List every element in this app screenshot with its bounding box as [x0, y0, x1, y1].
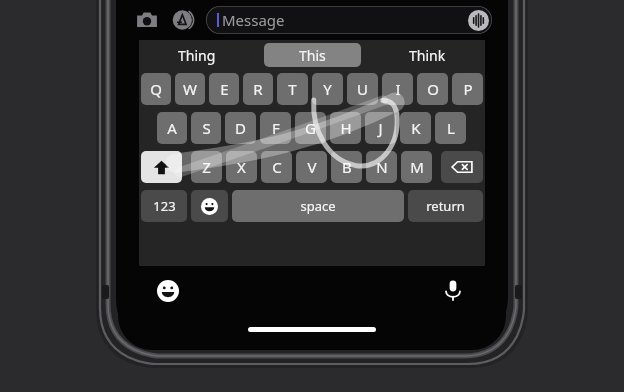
button[interactable]: O [417, 73, 448, 105]
staticText: F [272, 118, 280, 138]
staticText: 123 [153, 197, 176, 215]
staticText: N [376, 157, 388, 177]
button[interactable]: Z [191, 151, 222, 183]
staticText: G [305, 118, 316, 138]
staticText: This [299, 46, 326, 65]
button[interactable]: B [331, 151, 362, 183]
staticText: P [463, 79, 473, 99]
button[interactable]: Shift [141, 151, 182, 183]
button[interactable]: Dictation [439, 276, 467, 304]
staticText: Think [409, 46, 446, 65]
button[interactable]: Emoji [155, 278, 181, 304]
staticText: L [447, 118, 455, 138]
button[interactable]: M [401, 151, 432, 183]
staticText: Message [222, 10, 285, 30]
button[interactable]: D [225, 112, 256, 144]
button[interactable]: R [243, 73, 273, 105]
staticText: Thing [178, 46, 216, 65]
staticText: return [426, 197, 465, 215]
button[interactable]: I [382, 73, 413, 105]
staticText: T [288, 79, 297, 99]
button[interactable]: V [296, 151, 327, 183]
staticText: space [300, 197, 336, 215]
staticText: M [410, 157, 424, 177]
button[interactable]: Thing [178, 46, 216, 65]
staticText: Y [323, 79, 332, 99]
button[interactable]: 123 [141, 190, 187, 222]
button[interactable]: L [435, 112, 466, 144]
staticText: O [427, 79, 439, 99]
button[interactable]: Y [312, 73, 343, 105]
staticText: K [411, 118, 421, 138]
button[interactable]: F [260, 112, 291, 144]
button[interactable]: Backspace [441, 151, 483, 183]
staticText: B [342, 157, 352, 177]
button[interactable]: return [408, 190, 483, 222]
button[interactable]: Message [206, 6, 492, 34]
button[interactable]: K [400, 112, 431, 144]
staticText: D [235, 118, 246, 138]
button[interactable]: Q [141, 73, 171, 105]
staticText: E [220, 79, 229, 99]
staticText: V [307, 157, 317, 177]
staticText: Q [150, 79, 162, 99]
staticText: J [378, 118, 383, 138]
button[interactable]: Emoji keyboard [191, 190, 228, 222]
button[interactable]: T [277, 73, 308, 105]
button[interactable]: X [226, 151, 257, 183]
button[interactable]: Camera [132, 5, 162, 35]
staticText: C [272, 157, 282, 177]
button[interactable]: App Store [168, 5, 198, 35]
button[interactable]: E [209, 73, 239, 105]
staticText: X [237, 157, 246, 177]
button[interactable]: C [261, 151, 292, 183]
button[interactable]: Think [409, 46, 446, 65]
staticText: Z [202, 157, 211, 177]
button[interactable]: W [175, 73, 205, 105]
button[interactable]: space [232, 190, 404, 222]
staticText: U [357, 79, 368, 99]
button[interactable]: This [264, 43, 361, 67]
button[interactable]: H [330, 112, 361, 144]
button[interactable]: S [191, 112, 221, 144]
button[interactable]: P [452, 73, 483, 105]
staticText: A [167, 118, 177, 138]
staticText: S [202, 118, 211, 138]
staticText: I [395, 79, 401, 99]
staticText: R [253, 79, 263, 99]
staticText: W [183, 79, 197, 99]
button[interactable]: A [157, 112, 187, 144]
button[interactable]: Audio message [466, 8, 490, 32]
staticText: H [340, 118, 352, 138]
button[interactable]: N [366, 151, 397, 183]
button[interactable]: J [365, 112, 396, 144]
button[interactable]: G [295, 112, 326, 144]
button[interactable]: U [347, 73, 378, 105]
